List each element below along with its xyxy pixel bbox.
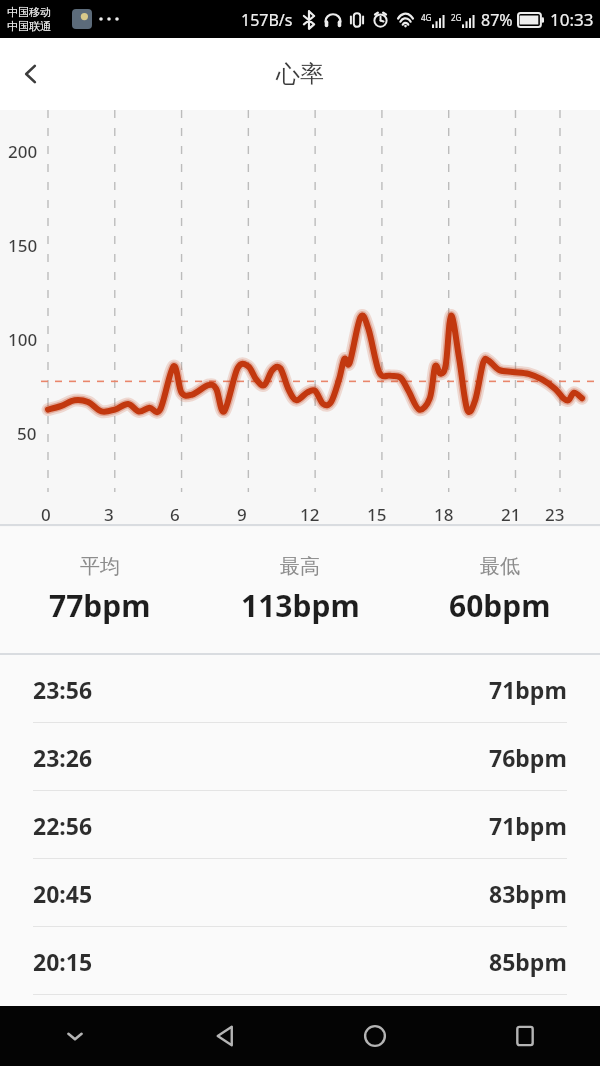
staticText: 113bpm — [241, 585, 360, 626]
staticText: 19:45 — [33, 1014, 93, 1045]
staticText: 22:56 — [33, 810, 93, 841]
button[interactable]: Recent apps — [450, 1006, 600, 1066]
button[interactable]: 23:26 — [0, 723, 600, 791]
staticText: 83bpm — [489, 878, 567, 909]
staticText: 中国联通 — [7, 19, 51, 33]
staticText: 77bpm — [49, 585, 151, 626]
staticText: 平均 — [80, 554, 120, 579]
button[interactable]: Back — [150, 1006, 300, 1066]
staticText: 23 — [545, 503, 565, 526]
staticText: 20:45 — [33, 878, 93, 909]
staticText: 100 — [8, 328, 38, 351]
staticText: 3 — [104, 503, 114, 526]
staticText: 4G — [421, 12, 432, 23]
button[interactable]: 20:45 — [0, 859, 600, 927]
staticText: 71bpm — [489, 674, 567, 705]
button[interactable]: Hide keyboard — [0, 1006, 150, 1066]
button[interactable]: 最高 — [200, 554, 400, 626]
staticText: 最低 — [480, 554, 520, 579]
staticText: 10:33 — [550, 8, 594, 31]
staticText: 71bpm — [489, 810, 567, 841]
staticText: 87% — [481, 9, 513, 31]
staticText: 23:56 — [33, 674, 93, 705]
staticText: 最高 — [280, 554, 320, 579]
staticText: 18 — [434, 503, 454, 526]
button[interactable]: 最低 — [400, 554, 600, 626]
staticText: 50 — [17, 422, 37, 445]
staticText: 76bpm — [489, 742, 567, 773]
staticText: 0 — [41, 503, 51, 526]
button[interactable]: Back — [0, 38, 62, 110]
staticText: 150 — [8, 234, 38, 257]
staticText: 21 — [501, 503, 521, 526]
staticText: 9 — [237, 503, 247, 526]
staticText: 心率 — [276, 59, 324, 89]
staticText: 200 — [8, 140, 38, 163]
staticText: 79bpm — [489, 1014, 567, 1045]
staticText: 20:15 — [33, 946, 93, 977]
button[interactable]: 20:15 — [0, 927, 600, 995]
staticText: 157B/s — [241, 9, 293, 31]
button[interactable]: 19:45 — [0, 995, 600, 1063]
button[interactable]: Home — [300, 1006, 450, 1066]
staticText: 60bpm — [449, 585, 551, 626]
staticText: 85bpm — [489, 946, 567, 977]
staticText: 15 — [367, 503, 387, 526]
staticText: 中国移动 — [7, 5, 51, 19]
staticText: 12 — [300, 503, 320, 526]
staticText: 23:26 — [33, 742, 93, 773]
button[interactable]: 23:56 — [0, 655, 600, 723]
staticText: 6 — [170, 503, 180, 526]
button[interactable]: 平均 — [0, 554, 200, 626]
staticText: 2G — [451, 12, 462, 23]
button[interactable]: 22:56 — [0, 791, 600, 859]
